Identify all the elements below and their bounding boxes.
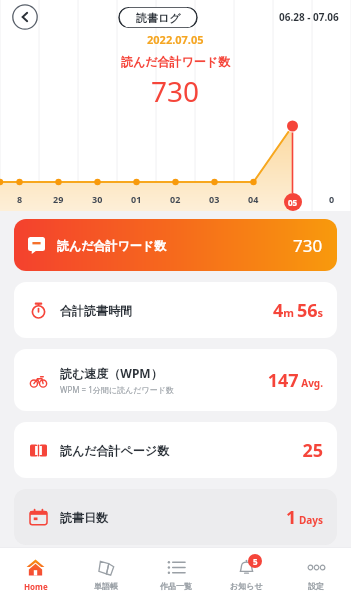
staticText: 147 Avg. xyxy=(267,368,323,393)
staticText: 読書ログ xyxy=(136,11,181,25)
staticText: 読んだ合計ページ数 xyxy=(60,443,170,458)
staticText: 02 xyxy=(170,193,181,205)
button[interactable]: お知らせ xyxy=(211,548,281,600)
button[interactable]: 読む速度（WPM） xyxy=(14,349,337,411)
staticText: 03 xyxy=(209,193,220,205)
button[interactable]: 設定 xyxy=(281,548,351,600)
staticText: 25 xyxy=(302,438,323,463)
button[interactable]: 読書日数 xyxy=(14,489,337,545)
staticText: 730 xyxy=(293,234,323,257)
button[interactable]: 読んだ合計ページ数 xyxy=(14,422,337,478)
staticText: 05 xyxy=(288,197,298,208)
staticText: 2022.07.05 xyxy=(147,32,204,47)
staticText: 読書日数 xyxy=(60,510,108,525)
staticText: 単語帳 xyxy=(94,581,118,591)
button[interactable]: Back xyxy=(12,4,38,30)
staticText: 06.28 - 07.06 xyxy=(279,10,339,24)
staticText: 読んだ合計ワード数 xyxy=(57,238,167,253)
button[interactable]: 読んだ合計ワード数 xyxy=(14,219,337,271)
staticText: 1 Days xyxy=(286,505,323,530)
staticText: 読む速度（WPM） xyxy=(60,365,163,381)
staticText: 730 xyxy=(151,72,200,110)
staticText: WPM = 1分間に読んだワード数 xyxy=(60,384,174,395)
staticText: 読んだ合計ワード数 xyxy=(121,54,231,69)
staticText: 作品一覧 xyxy=(160,581,192,591)
staticText: 29 xyxy=(53,193,64,205)
staticText: 合計読書時間 xyxy=(60,303,132,318)
staticText: 04 xyxy=(248,193,259,205)
staticText: 8 xyxy=(17,193,23,205)
staticText: 01 xyxy=(131,193,142,205)
button[interactable]: Home xyxy=(0,548,71,600)
staticText: 30 xyxy=(92,193,103,205)
staticText: Home xyxy=(24,581,48,592)
staticText: 5 xyxy=(253,556,258,567)
button[interactable]: 単語帳 xyxy=(71,548,141,600)
button[interactable]: 合計読書時間 xyxy=(14,282,337,338)
staticText: お知らせ xyxy=(230,581,263,591)
button[interactable]: 作品一覧 xyxy=(141,548,211,600)
staticText: 0 xyxy=(329,193,335,205)
button[interactable]: 読書ログ xyxy=(118,7,198,28)
staticText: 設定 xyxy=(308,581,324,591)
staticText: 4m 56s xyxy=(273,298,323,323)
